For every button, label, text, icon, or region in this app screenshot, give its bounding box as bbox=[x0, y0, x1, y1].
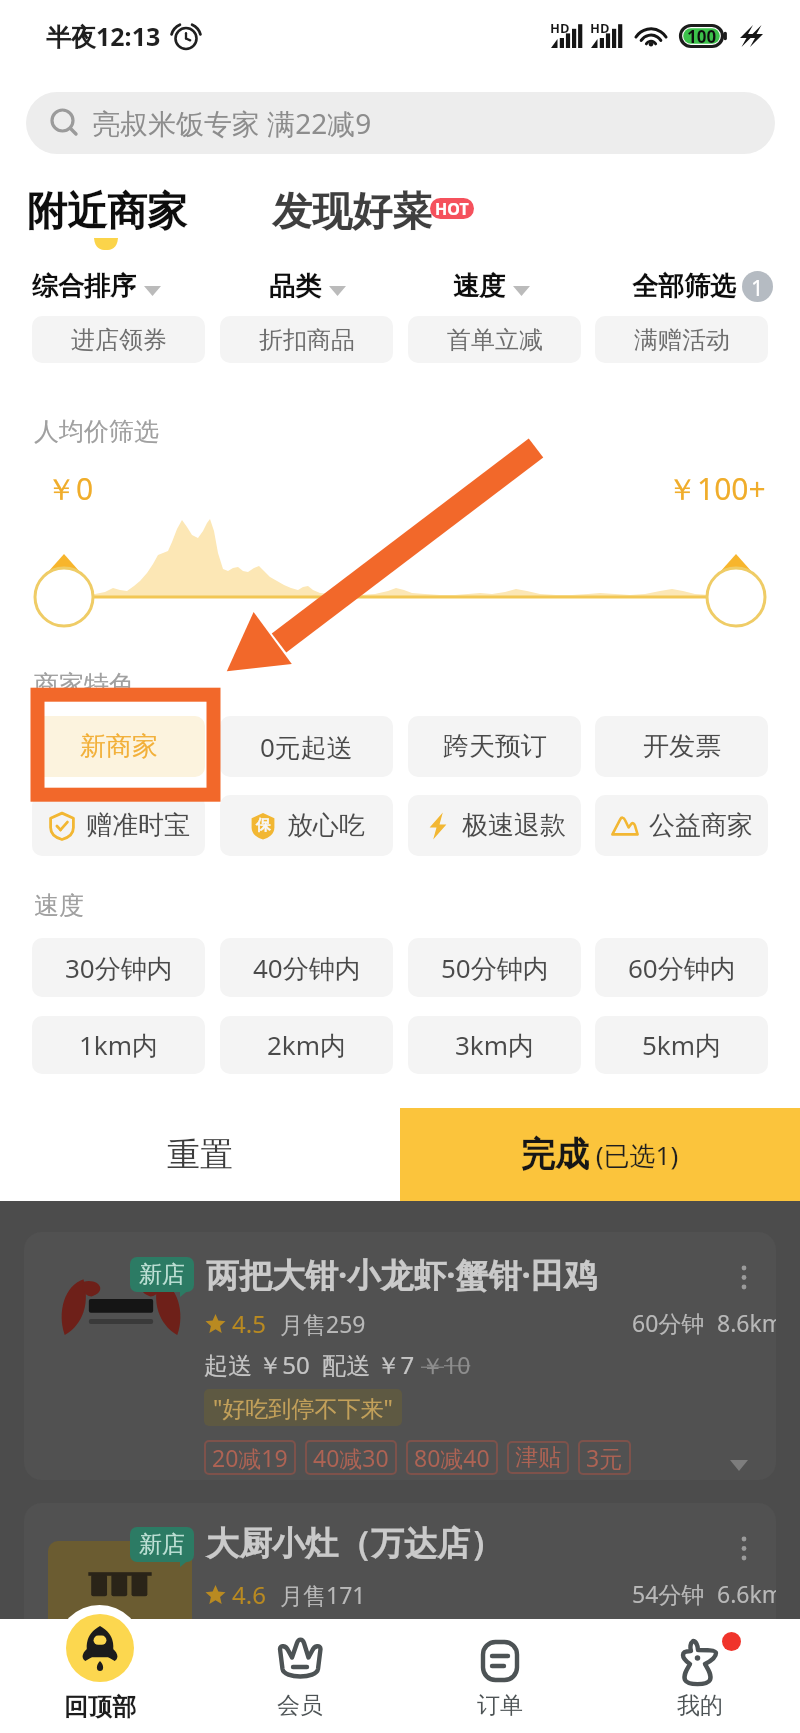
button[interactable]: 0元起送 bbox=[220, 716, 393, 777]
staticText: 全部筛选 bbox=[632, 270, 736, 303]
button[interactable]: 极速退款 bbox=[408, 795, 581, 856]
staticText: 首单立减 bbox=[447, 325, 543, 355]
staticText: 2km内 bbox=[267, 1027, 347, 1063]
staticText: 人均价筛选 bbox=[34, 416, 159, 447]
staticText: 40减30 bbox=[313, 1442, 389, 1473]
staticText: 3km内 bbox=[455, 1027, 535, 1063]
button[interactable]: 重置 bbox=[0, 1108, 400, 1201]
button[interactable]: 新店 bbox=[24, 1503, 776, 1733]
staticText: 100 bbox=[687, 25, 717, 48]
staticText: ￥0 bbox=[46, 468, 94, 509]
button[interactable]: 新店 bbox=[24, 1232, 776, 1480]
staticText: 0元起送 bbox=[260, 729, 353, 765]
staticText: 折扣商品 bbox=[259, 325, 355, 355]
staticText: 品类 bbox=[269, 270, 321, 303]
staticText: 3元 bbox=[586, 1442, 623, 1473]
button[interactable]: 3km内 bbox=[408, 1016, 581, 1074]
staticText: (已选1) bbox=[589, 1137, 679, 1173]
staticText: 回顶部 bbox=[64, 1692, 136, 1722]
staticText: 30分钟内 bbox=[65, 950, 173, 986]
staticText: 亮叔米饭专家 满22减9 bbox=[92, 104, 372, 142]
button[interactable]: 新商家 bbox=[32, 716, 205, 777]
staticText: 跨天预订 bbox=[443, 730, 547, 763]
staticText: 商家特色 bbox=[34, 669, 134, 700]
staticText: 发现好菜 bbox=[272, 186, 432, 236]
staticText: 新店 bbox=[139, 1530, 185, 1559]
staticText: 60分钟 bbox=[632, 1307, 705, 1338]
staticText: 54分钟 bbox=[632, 1578, 705, 1609]
button[interactable]: 1km内 bbox=[32, 1016, 205, 1074]
staticText: 我的 bbox=[677, 1691, 723, 1720]
staticText: 新店 bbox=[139, 1260, 185, 1289]
staticText: ￥10 bbox=[421, 1349, 471, 1380]
staticText: 会员 bbox=[277, 1691, 323, 1720]
staticText: 两把大钳·小龙虾·蟹钳·田鸡 bbox=[206, 1252, 597, 1297]
button[interactable]: 50分钟内 bbox=[408, 938, 581, 997]
button[interactable]: 完成 bbox=[400, 1108, 800, 1201]
button[interactable]: 首单立减 bbox=[408, 316, 581, 363]
staticText: 8.6km bbox=[717, 1307, 776, 1338]
button[interactable]: 赠准时宝 bbox=[32, 795, 205, 856]
button[interactable]: 订单 bbox=[400, 1619, 600, 1733]
staticText: HOT bbox=[435, 198, 469, 219]
staticText: 1km内 bbox=[79, 1027, 159, 1063]
staticText: 40分钟内 bbox=[253, 950, 361, 986]
button[interactable]: 2km内 bbox=[220, 1016, 393, 1074]
staticText: 80减40 bbox=[414, 1442, 490, 1473]
button[interactable]: 保 bbox=[220, 795, 393, 856]
staticText: 60分钟内 bbox=[628, 950, 736, 986]
staticText: 开发票 bbox=[643, 730, 721, 763]
staticText: HD bbox=[550, 19, 570, 37]
staticText: 新商家 bbox=[80, 730, 158, 763]
staticText: 4.5 bbox=[232, 1307, 266, 1340]
button[interactable]: 折扣商品 bbox=[220, 316, 393, 363]
staticText: 1 bbox=[751, 272, 764, 302]
staticText: 速度 bbox=[453, 270, 505, 303]
button[interactable]: 回顶部 bbox=[0, 1619, 200, 1733]
button[interactable]: 附近商家 bbox=[27, 186, 187, 236]
button[interactable]: 开发票 bbox=[595, 716, 768, 777]
button[interactable]: 60分钟内 bbox=[595, 938, 768, 997]
staticText: 附近商家 bbox=[27, 186, 187, 236]
button[interactable]: 会员 bbox=[200, 1619, 400, 1733]
button[interactable]: 品类 bbox=[269, 270, 346, 303]
staticText: "好吃到停不下来" bbox=[213, 1392, 393, 1423]
staticText: 完成 bbox=[521, 1133, 589, 1176]
button[interactable]: More options bbox=[724, 1529, 764, 1569]
button[interactable]: 综合排序 bbox=[32, 270, 161, 303]
staticText: ￥100+ bbox=[667, 468, 766, 509]
button[interactable]: 满赠活动 bbox=[595, 316, 768, 363]
button[interactable]: 发现好菜 bbox=[272, 186, 476, 236]
button[interactable]: Back to top bbox=[66, 1614, 134, 1682]
staticText: 赠准时宝 bbox=[86, 809, 190, 842]
staticText: 保 bbox=[256, 816, 271, 835]
button[interactable]: More options bbox=[724, 1258, 764, 1298]
button[interactable]: 公益商家 bbox=[595, 795, 768, 856]
staticText: 极速退款 bbox=[462, 809, 566, 842]
staticText: 半夜12:13 bbox=[46, 19, 161, 53]
button[interactable]: 跨天预订 bbox=[408, 716, 581, 777]
staticText: 速度 bbox=[34, 890, 84, 921]
staticText: 4.6 bbox=[232, 1578, 266, 1611]
staticText: 5km内 bbox=[642, 1027, 722, 1063]
button[interactable]: 亮叔米饭专家 满22减9 bbox=[26, 92, 775, 154]
staticText: 6.6km bbox=[717, 1578, 776, 1609]
staticText: 50分钟内 bbox=[441, 950, 549, 986]
staticText: 月售171 bbox=[280, 1579, 366, 1610]
staticText: 放心吃 bbox=[287, 809, 365, 842]
button[interactable]: 进店领券 bbox=[32, 316, 205, 363]
button[interactable]: 我的 bbox=[600, 1619, 800, 1733]
staticText: 满赠活动 bbox=[634, 325, 730, 355]
button[interactable]: 全部筛选 bbox=[632, 270, 773, 303]
staticText: 重置 bbox=[167, 1134, 233, 1176]
staticText: 津贴 bbox=[515, 1443, 561, 1472]
button[interactable]: 40分钟内 bbox=[220, 938, 393, 997]
button[interactable]: 5km内 bbox=[595, 1016, 768, 1074]
staticText: 20减19 bbox=[212, 1442, 288, 1473]
staticText: 综合排序 bbox=[32, 270, 136, 303]
button[interactable]: 速度 bbox=[453, 270, 530, 303]
staticText: 进店领券 bbox=[71, 325, 167, 355]
button[interactable]: 30分钟内 bbox=[32, 938, 205, 997]
staticText: 起送 ￥50 配送 ￥7 bbox=[204, 1348, 421, 1381]
staticText: 订单 bbox=[477, 1691, 523, 1720]
